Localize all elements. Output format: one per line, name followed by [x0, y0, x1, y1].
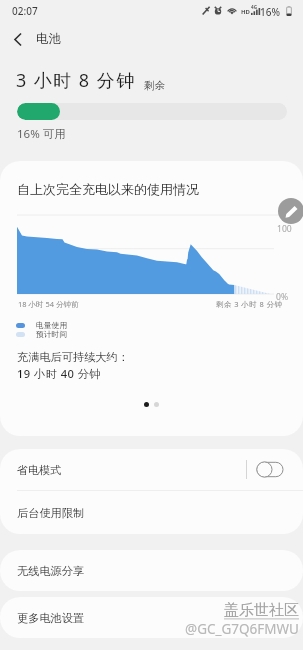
- staticText: 盖乐世社区: [224, 601, 299, 620]
- button[interactable]: 后台使用限制: [0, 491, 303, 534]
- button[interactable]: Power saving mode toggle: [256, 461, 284, 478]
- staticText: 0%: [276, 291, 289, 303]
- staticText: 电量使用: [36, 320, 68, 330]
- staticText: 剩余 3 小时 8 分钟: [216, 299, 283, 309]
- staticText: HD: [241, 8, 250, 16]
- staticText: 16%: [260, 5, 280, 19]
- staticText: @GC_G7Q6FMWU: [185, 620, 299, 638]
- staticText: 100: [277, 223, 292, 235]
- staticText: 无线电源分享: [17, 564, 85, 578]
- staticText: 02:07: [12, 4, 38, 18]
- staticText: 18 小时 54 分钟前: [18, 299, 79, 309]
- staticText: 16% 可用: [17, 126, 66, 142]
- staticText: 预计时间: [36, 329, 68, 339]
- staticText: 电池: [36, 31, 61, 47]
- staticText: 自上次完全充电以来的使用情况: [17, 181, 199, 197]
- button[interactable]: Back: [0, 22, 36, 56]
- button[interactable]: Edit: [278, 198, 303, 224]
- button[interactable]: 省电模式: [0, 449, 303, 490]
- staticText: 剩余: [144, 79, 165, 92]
- staticText: 省电模式: [17, 463, 61, 477]
- button[interactable]: 更多电池设置: [0, 597, 303, 638]
- staticText: 更多电池设置: [17, 611, 85, 625]
- staticText: 4G: [251, 4, 257, 10]
- staticText: 19 小时 40 分钟: [17, 366, 102, 381]
- staticText: 3 小时 8 分钟: [16, 68, 136, 93]
- button[interactable]: 无线电源分享: [0, 550, 303, 591]
- staticText: 后台使用限制: [17, 506, 85, 520]
- staticText: 充满电后可持续大约：: [17, 350, 129, 364]
